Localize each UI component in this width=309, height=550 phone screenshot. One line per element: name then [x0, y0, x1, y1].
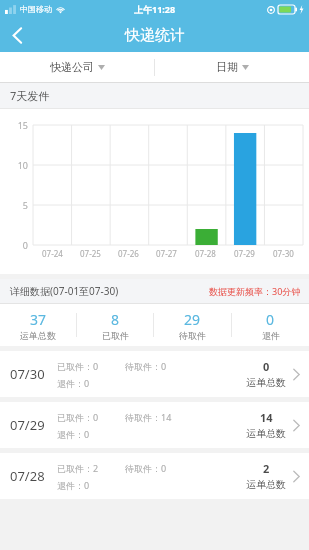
staticText: 07-30	[273, 248, 294, 259]
button[interactable]: 0	[232, 304, 309, 346]
staticText: 待取件：0	[125, 462, 167, 474]
staticText: 数据更新频率：	[209, 286, 272, 297]
staticText: 2	[263, 461, 270, 476]
staticText: 已取件：0	[57, 360, 99, 372]
staticText: 07/30	[10, 365, 45, 383]
button[interactable]: 快递公司	[0, 52, 154, 82]
staticText: 运单总数	[20, 330, 56, 341]
button[interactable]: Back	[0, 18, 34, 52]
staticText: 已取件	[102, 330, 129, 341]
staticText: 0	[6, 239, 28, 251]
staticText: 退件	[262, 330, 280, 341]
button[interactable]: 07/29	[0, 402, 309, 448]
staticText: 07-24	[42, 248, 63, 259]
button[interactable]: 日期	[155, 52, 309, 82]
staticText: 运单总数	[246, 478, 286, 491]
staticText: 快递统计	[125, 26, 185, 45]
staticText: 7天发件	[10, 88, 50, 103]
staticText: 详细数据(07-01至07-30)	[10, 284, 119, 298]
button[interactable]: 07/28	[0, 453, 309, 499]
staticText: 10	[6, 159, 28, 171]
staticText: 8	[111, 310, 120, 329]
staticText: 07-25	[80, 248, 101, 259]
staticText: 07-28	[195, 248, 216, 259]
staticText: 退件：0	[57, 479, 90, 491]
staticText: 15	[6, 119, 28, 131]
staticText: 07/28	[10, 467, 45, 485]
staticText: 待取件	[179, 330, 206, 341]
staticText: 07-26	[118, 248, 139, 259]
staticText: 07-29	[234, 248, 255, 259]
staticText: 运单总数	[246, 427, 286, 440]
staticText: 已取件：0	[57, 411, 99, 423]
button[interactable]: 29	[154, 304, 231, 346]
staticText: 14	[260, 410, 273, 425]
staticText: 中国移动	[20, 4, 52, 14]
staticText: 37	[30, 310, 47, 329]
staticText: 待取件：0	[125, 360, 167, 372]
button[interactable]: 37	[0, 304, 76, 346]
staticText: 日期	[216, 60, 238, 74]
staticText: 30分钟	[272, 285, 301, 297]
staticText: 已取件：2	[57, 462, 99, 474]
button[interactable]: 8	[77, 304, 153, 346]
staticText: 07-27	[156, 248, 177, 259]
staticText: 退件：0	[57, 428, 90, 440]
staticText: 运单总数	[246, 376, 286, 389]
staticText: 5	[6, 199, 28, 211]
staticText: 快递公司	[50, 60, 94, 74]
staticText: 07/29	[10, 416, 45, 434]
button[interactable]: 07/30	[0, 351, 309, 397]
staticText: 退件：0	[57, 377, 90, 389]
staticText: 0	[263, 359, 270, 374]
staticText: 0	[266, 310, 275, 329]
staticText: 上午11:28	[134, 3, 176, 15]
staticText: 待取件：14	[125, 411, 172, 423]
staticText: 29	[184, 310, 201, 329]
